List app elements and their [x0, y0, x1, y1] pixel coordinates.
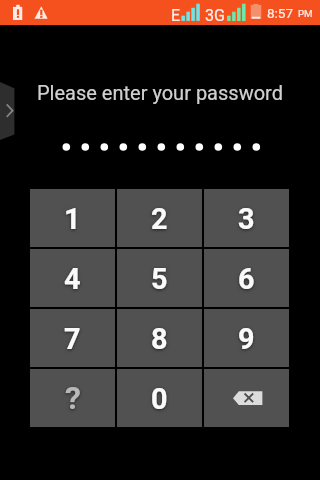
staticText: 3	[238, 202, 255, 236]
staticText: 4	[64, 262, 81, 296]
button[interactable]	[117, 189, 202, 247]
staticText: E	[171, 6, 181, 25]
button[interactable]	[204, 309, 289, 367]
staticText: 5	[151, 262, 168, 296]
button[interactable]	[117, 249, 202, 307]
staticText: 8	[151, 322, 168, 356]
staticText: PM	[298, 8, 313, 19]
button[interactable]: Open navigation drawer	[0, 82, 15, 140]
button[interactable]: Backspace	[204, 369, 289, 427]
staticText: 9	[238, 322, 255, 356]
staticText: 6	[238, 262, 255, 296]
button[interactable]: Help	[30, 369, 115, 427]
button[interactable]	[30, 309, 115, 367]
button[interactable]	[204, 249, 289, 307]
staticText: ?	[65, 379, 81, 417]
staticText: 0	[151, 382, 168, 416]
staticText: Please enter your password	[37, 81, 283, 104]
button[interactable]	[117, 369, 202, 427]
button[interactable]	[117, 309, 202, 367]
button[interactable]	[204, 189, 289, 247]
button[interactable]	[30, 249, 115, 307]
staticText: 7	[64, 322, 81, 356]
staticText: 1	[64, 202, 81, 236]
staticText: 2	[151, 202, 168, 236]
button[interactable]	[30, 189, 115, 247]
staticText: 8:57	[267, 5, 294, 21]
staticText: 3G	[205, 6, 225, 25]
